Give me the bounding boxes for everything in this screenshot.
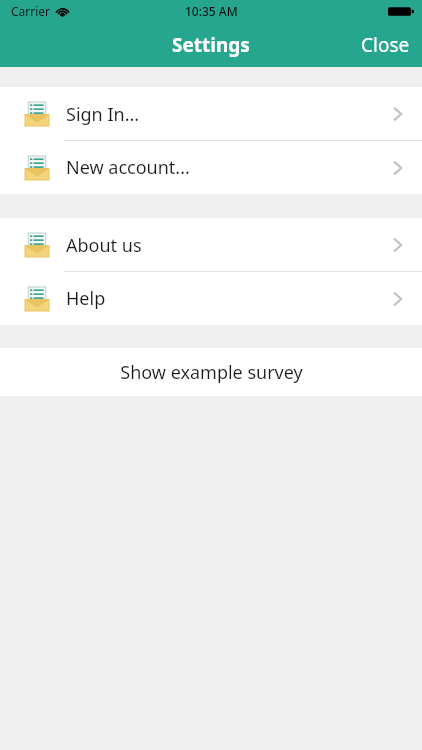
staticText: 10:35 AM	[185, 3, 238, 19]
staticText: Close	[361, 32, 410, 58]
button[interactable]: New account...	[0, 141, 422, 194]
button[interactable]: Show example survey	[0, 348, 422, 396]
staticText: Help	[66, 286, 106, 311]
staticText: Sign In...	[66, 102, 140, 127]
staticText: Carrier	[11, 3, 51, 19]
staticText: About us	[66, 233, 142, 258]
staticText: Show example survey	[120, 360, 303, 385]
button[interactable]: About us	[0, 218, 422, 272]
button[interactable]: Sign In...	[0, 87, 422, 141]
button[interactable]: Close	[349, 26, 422, 64]
staticText: Settings	[172, 32, 250, 58]
staticText: New account...	[66, 155, 190, 180]
button[interactable]: Help	[0, 272, 422, 325]
